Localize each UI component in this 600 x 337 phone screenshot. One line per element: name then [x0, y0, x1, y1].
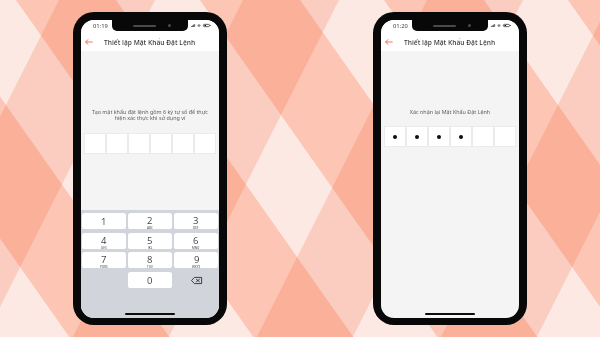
button[interactable] — [384, 126, 406, 147]
button[interactable] — [128, 133, 150, 154]
staticText: 7 — [101, 253, 107, 266]
button[interactable] — [450, 126, 472, 147]
button[interactable]: Back — [382, 35, 395, 48]
button[interactable] — [84, 133, 106, 154]
button[interactable] — [194, 133, 216, 154]
button[interactable]: 8 — [128, 252, 172, 268]
button[interactable]: 2 — [128, 213, 172, 229]
button[interactable] — [494, 126, 516, 147]
button[interactable] — [150, 133, 172, 154]
button[interactable]: 4 — [82, 233, 126, 249]
staticText: Xác nhận lại Mật Khẩu Đặt Lệnh — [387, 108, 513, 115]
staticText: PQRS — [100, 265, 108, 268]
button[interactable] — [106, 133, 128, 154]
staticText: 3 — [193, 214, 199, 227]
button[interactable]: 3 — [174, 213, 218, 229]
button[interactable] — [472, 126, 494, 147]
staticText: 1 — [101, 215, 107, 228]
button[interactable]: Back — [82, 35, 95, 48]
staticText: Thiết lập Mật Khẩu Đặt Lệnh — [104, 38, 196, 47]
staticText: GHI — [101, 246, 107, 249]
staticText: 9 — [194, 253, 200, 266]
button[interactable] — [428, 126, 450, 147]
staticText: Tạo mật khẩu đặt lệnh gồm 6 ký tự số để … — [87, 108, 213, 122]
staticText: 01:20 — [393, 22, 408, 30]
staticText: ABC — [147, 226, 153, 229]
button[interactable] — [406, 126, 428, 147]
button[interactable]: 6 — [174, 233, 218, 249]
button[interactable]: Backspace — [174, 272, 218, 288]
button[interactable] — [172, 133, 194, 154]
button[interactable]: 7 — [82, 252, 126, 268]
staticText: 01:19 — [93, 22, 108, 30]
staticText: 0 — [147, 274, 153, 287]
staticText: 8 — [147, 253, 153, 266]
staticText: 5 — [147, 234, 153, 247]
staticText: MNO — [192, 246, 200, 249]
staticText: WXYZ — [192, 265, 201, 268]
button[interactable]: 1 — [82, 213, 126, 229]
staticText: 2 — [147, 214, 153, 227]
button[interactable]: 0 — [128, 272, 172, 288]
staticText: DEF — [193, 226, 199, 229]
staticText: TUV — [147, 265, 153, 268]
staticText: 4 — [101, 234, 107, 247]
staticText: 6 — [193, 234, 199, 247]
staticText: Thiết lập Mật Khẩu Đặt Lệnh — [404, 38, 496, 47]
button[interactable]: 9 — [174, 252, 218, 268]
staticText: JKL — [148, 246, 153, 249]
button[interactable]: 5 — [128, 233, 172, 249]
